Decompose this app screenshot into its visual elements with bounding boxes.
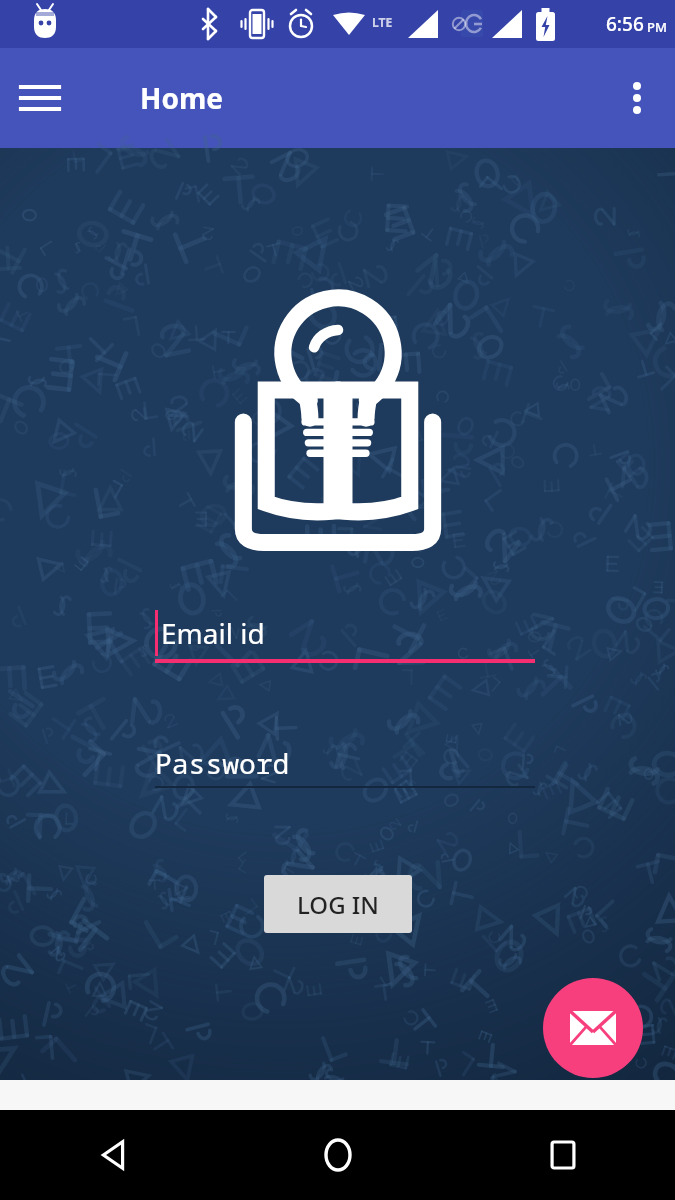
button[interactable]: Back [0, 1110, 225, 1200]
button[interactable]: Email id [155, 610, 535, 663]
staticText: LTE [372, 14, 393, 30]
button[interactable]: Open navigation menu [14, 72, 66, 124]
button[interactable]: Send email [543, 978, 643, 1078]
staticText: 6:56 [606, 11, 644, 37]
button[interactable]: Password [155, 744, 535, 788]
staticText: Email id [161, 614, 265, 652]
button[interactable]: More options [611, 72, 663, 124]
button[interactable]: Home [225, 1110, 450, 1200]
staticText: Home [140, 79, 223, 117]
button[interactable]: LOG IN [264, 875, 412, 933]
staticText: LOG IN [297, 888, 379, 921]
staticText: PM [647, 18, 667, 36]
staticText: Password [155, 744, 290, 782]
button[interactable]: Recent apps [450, 1110, 675, 1200]
